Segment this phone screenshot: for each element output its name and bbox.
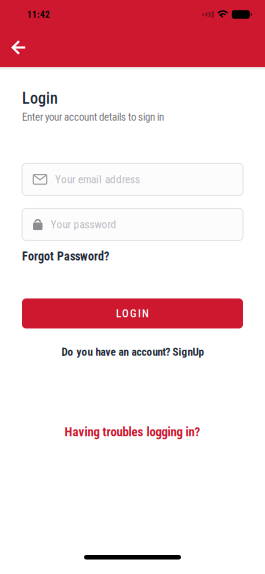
staticText: Forgot Password? (22, 249, 109, 263)
button[interactable]: Forgot Password? (22, 249, 109, 263)
button[interactable]: LOGIN (22, 298, 243, 328)
staticText: Enter your account details to sign in (22, 111, 164, 123)
button[interactable]: Having troubles logging in? (22, 424, 243, 439)
staticText: L O G I N (116, 307, 149, 320)
button[interactable]: SignUp (172, 345, 203, 358)
staticText: Login (22, 89, 58, 108)
staticText: SignUp (172, 345, 203, 358)
staticText: Having troubles logging in? (64, 424, 200, 439)
staticText: Your password (50, 218, 116, 231)
button[interactable]: Back (0, 40, 26, 55)
button[interactable]: Your password (22, 208, 243, 240)
staticText: Your email address (55, 173, 140, 186)
staticText: 11:42 (27, 9, 50, 20)
button[interactable]: Your email address (22, 163, 243, 195)
staticText: Do you have an account? (61, 345, 170, 358)
